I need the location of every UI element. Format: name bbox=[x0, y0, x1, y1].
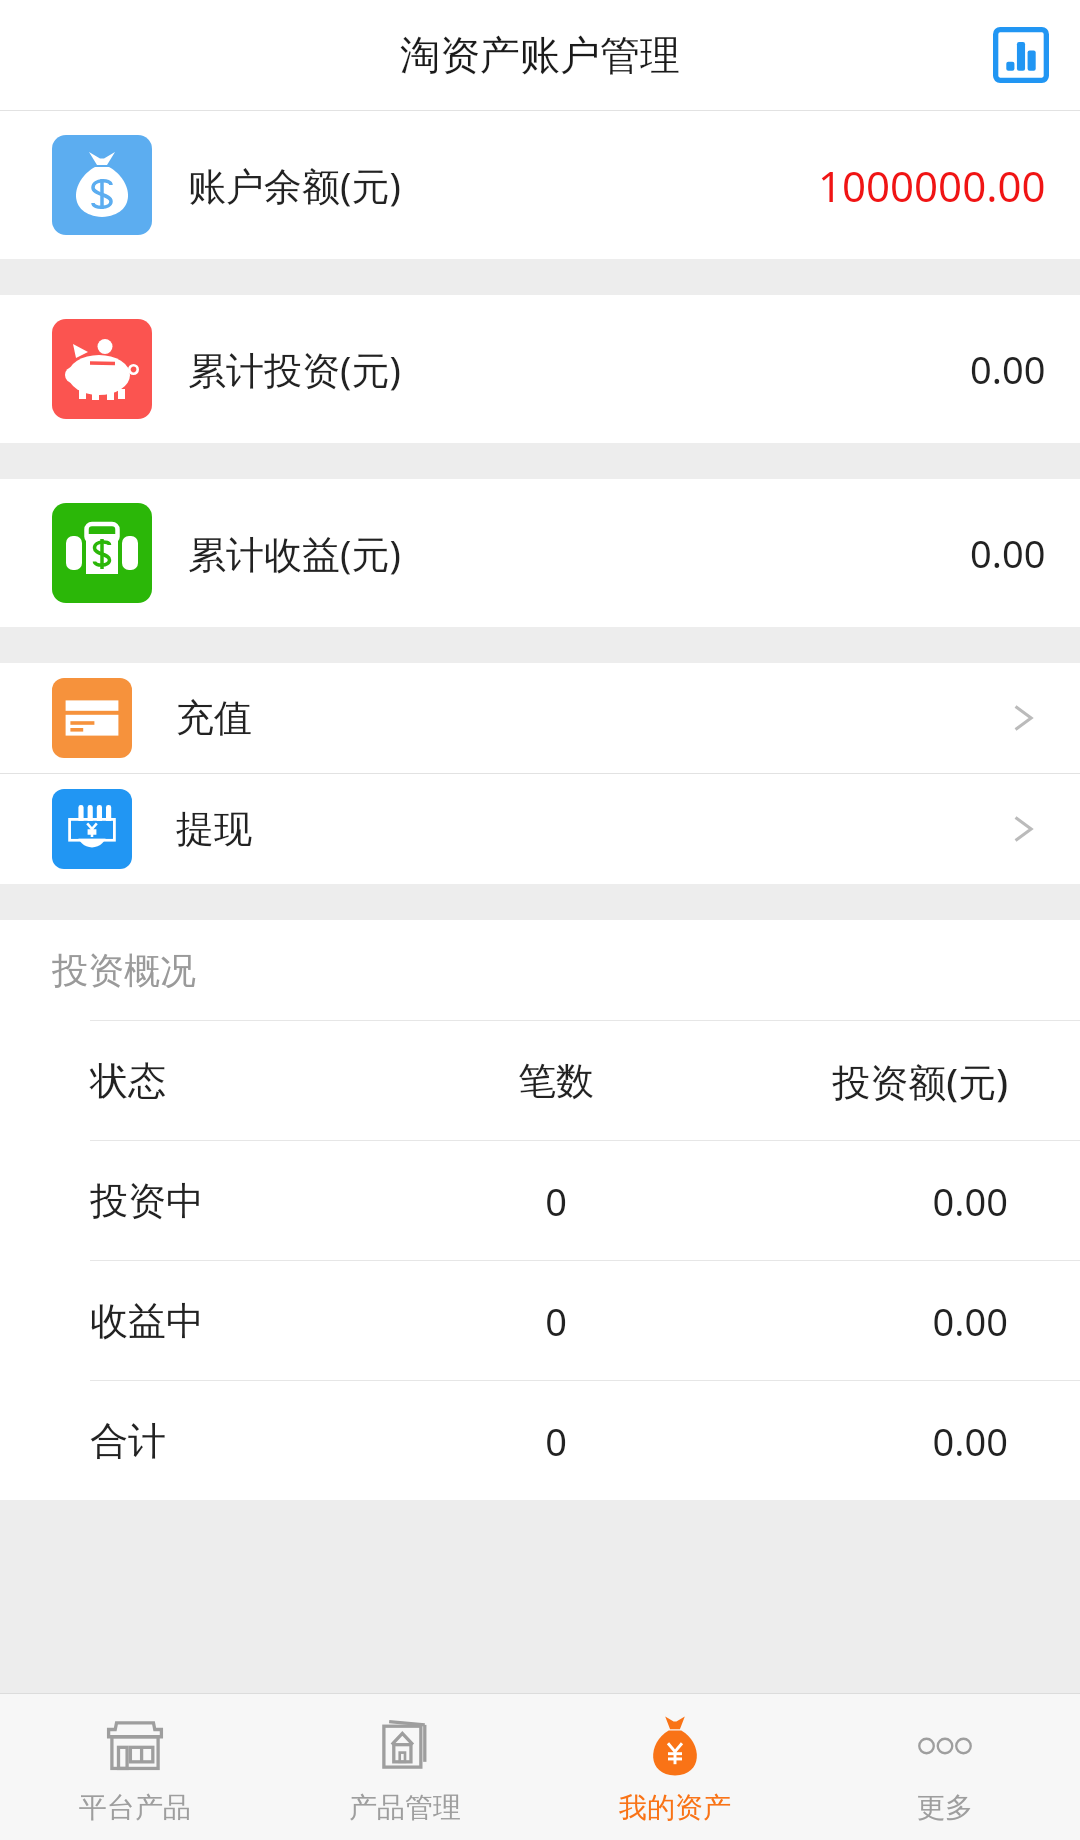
staticText: 提现 bbox=[176, 805, 252, 853]
staticText: 产品管理 bbox=[349, 1790, 461, 1825]
staticText: 0.00 bbox=[689, 1295, 1008, 1347]
button[interactable]: 平台产品 bbox=[0, 1694, 270, 1840]
button[interactable]: 更多 bbox=[810, 1694, 1080, 1840]
staticText: 投资中 bbox=[90, 1177, 423, 1225]
staticText: 0 bbox=[423, 1415, 689, 1467]
button[interactable]: 累计收益(元) bbox=[0, 479, 1080, 627]
staticText: 充值 bbox=[176, 694, 252, 742]
staticText: 状态 bbox=[90, 1057, 423, 1105]
staticText: 淘资产账户管理 bbox=[400, 30, 680, 80]
staticText: 我的资产 bbox=[619, 1790, 731, 1825]
staticText: 累计投资(元) bbox=[188, 343, 401, 395]
staticText: 平台产品 bbox=[79, 1790, 191, 1825]
staticText: 0.00 bbox=[689, 1175, 1008, 1227]
staticText: 投资额(元) bbox=[689, 1055, 1008, 1107]
staticText: 累计收益(元) bbox=[188, 527, 401, 579]
staticText: 账户余额(元) bbox=[188, 159, 401, 211]
staticText: 投资概况 bbox=[52, 948, 196, 993]
staticText: 更多 bbox=[917, 1790, 973, 1825]
staticText: 0.00 bbox=[689, 1415, 1008, 1467]
button[interactable]: 充值 bbox=[0, 663, 1080, 773]
button[interactable]: 我的资产 bbox=[540, 1694, 810, 1840]
staticText: 收益中 bbox=[90, 1297, 423, 1345]
staticText: 0.00 bbox=[970, 527, 1046, 579]
staticText: 笔数 bbox=[423, 1057, 689, 1105]
staticText: 合计 bbox=[90, 1417, 423, 1465]
staticText: 0 bbox=[423, 1175, 689, 1227]
staticText: 0.00 bbox=[970, 343, 1046, 395]
staticText: 0 bbox=[423, 1295, 689, 1347]
button[interactable]: 提现 bbox=[0, 774, 1080, 884]
button[interactable]: 累计投资(元) bbox=[0, 295, 1080, 443]
button[interactable]: Statistics bbox=[988, 22, 1054, 88]
button[interactable]: 产品管理 bbox=[270, 1694, 540, 1840]
staticText: 1000000.00 bbox=[818, 157, 1046, 214]
button[interactable]: 账户余额(元) bbox=[0, 111, 1080, 259]
